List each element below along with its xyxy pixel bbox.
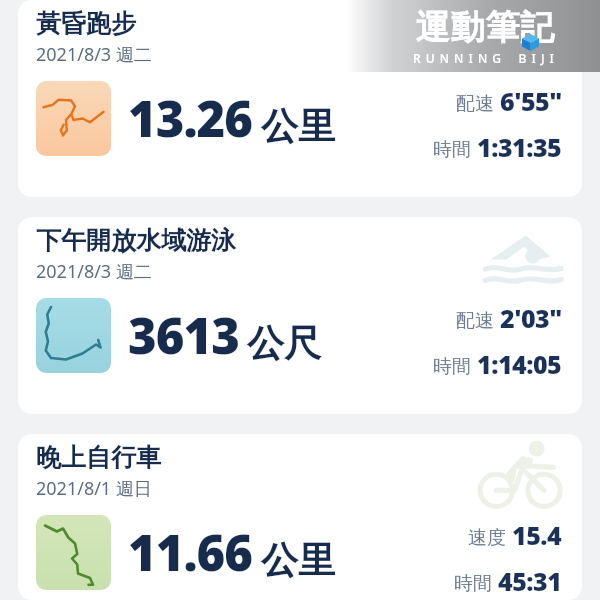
button[interactable]: 晚上自行車 [18, 434, 582, 600]
staticText: 2021/8/1 週日 [36, 476, 152, 501]
staticText: 2'03" [500, 301, 562, 335]
staticText: 配速 [456, 309, 494, 333]
staticText: 公里 [261, 103, 335, 150]
button[interactable]: 黃昏跑步 [18, 0, 582, 197]
staticText: R U N N I N G B I J I [413, 50, 555, 66]
staticText: 13.26 [128, 85, 253, 152]
staticText: 晚上自行車 [36, 442, 161, 473]
staticText: 6'55" [500, 84, 562, 118]
staticText: 速度 [468, 526, 506, 550]
staticText: 公里 [261, 537, 335, 584]
staticText: 黃昏跑步 [36, 8, 136, 39]
staticText: 15.4 [512, 518, 562, 552]
staticText: 2021/8/3 週二 [36, 42, 152, 67]
staticText: 11.66 [128, 519, 253, 586]
staticText: 記 [520, 6, 554, 49]
staticText: 1:31:35 [477, 130, 562, 164]
staticText: 2021/8/3 週二 [36, 259, 152, 284]
staticText: 3613 [128, 302, 239, 369]
button[interactable]: 下午開放水域游泳 [18, 217, 582, 414]
staticText: 運動筆 [415, 6, 520, 49]
staticText: 時間 [433, 355, 471, 379]
staticText: 時間 [454, 572, 492, 596]
staticText: 1:14:05 [477, 347, 562, 381]
staticText: 下午開放水域游泳 [36, 225, 236, 256]
staticText: 45:31 [498, 564, 562, 598]
staticText: 公尺 [247, 320, 321, 367]
staticText: 時間 [433, 138, 471, 162]
staticText: 配速 [456, 92, 494, 116]
